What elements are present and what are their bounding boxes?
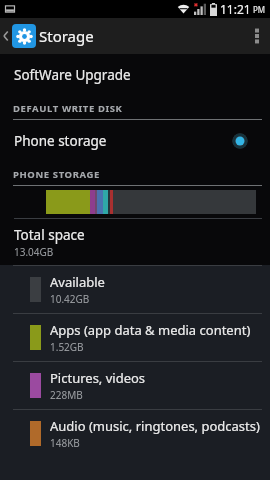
staticText: SoftWare Upgrade [14,66,131,84]
staticText: 10.42GB [50,292,90,306]
staticText: 148KB [50,436,80,450]
button[interactable]: Navigate up to Settings [0,18,40,54]
staticText: 1.52GB [50,340,84,354]
staticText: Phone storage [14,132,107,150]
staticText: PHONE STORAGE [13,168,100,181]
staticText: 228MB [50,388,83,402]
staticText: 11:21 [220,1,251,17]
button[interactable]: Phone storage [0,120,270,162]
staticText: Apps (app data & media content) [50,321,251,339]
button[interactable]: SoftWare Upgrade [0,54,270,96]
staticText: Total space [14,226,85,244]
button[interactable]: Total space [0,219,270,265]
staticText: DEFAULT WRITE DISK [13,102,123,115]
staticText: PM [253,4,266,15]
button[interactable]: Pictures, videos [0,362,270,409]
staticText: Available [50,273,105,291]
button[interactable]: Audio (music, ringtones, podcasts) [0,410,270,457]
button[interactable]: More options [244,18,270,54]
staticText: Audio (music, ringtones, podcasts) [50,417,260,435]
button[interactable]: Available [0,266,270,313]
staticText: Pictures, videos [50,369,146,387]
staticText: Storage [39,26,94,46]
staticText: 13.04GB [14,245,54,259]
button[interactable]: Apps (app data & media content) [0,314,270,361]
